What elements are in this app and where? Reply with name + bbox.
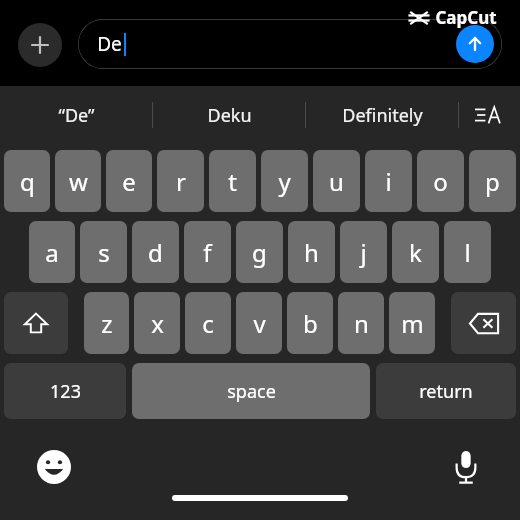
staticText: h: [304, 236, 319, 269]
staticText: u: [329, 165, 344, 198]
button[interactable]: e: [106, 150, 152, 212]
button[interactable]: m: [389, 292, 435, 354]
staticText: De: [97, 31, 122, 57]
staticText: s: [98, 236, 110, 269]
button[interactable]: return: [376, 363, 516, 419]
button[interactable]: y: [261, 150, 308, 212]
button[interactable]: g: [236, 221, 283, 283]
button[interactable]: Shift: [4, 292, 68, 354]
button[interactable]: o: [417, 150, 464, 212]
button[interactable]: Backspace: [451, 292, 516, 354]
staticText: Definitely: [342, 103, 423, 128]
staticText: a: [45, 236, 59, 269]
staticText: “De”: [58, 103, 95, 128]
staticText: v: [253, 307, 266, 340]
staticText: space: [227, 379, 276, 404]
staticText: w: [69, 165, 88, 198]
button[interactable]: f: [184, 221, 231, 283]
staticText: r: [176, 165, 186, 198]
button[interactable]: Dictation: [440, 441, 492, 493]
button[interactable]: Send: [456, 25, 494, 63]
staticText: f: [203, 236, 212, 269]
staticText: p: [485, 165, 500, 198]
staticText: m: [401, 307, 424, 340]
staticText: 123: [50, 379, 81, 404]
button[interactable]: Text formatting: [459, 86, 516, 144]
button[interactable]: Deku: [153, 86, 305, 144]
button[interactable]: k: [392, 221, 439, 283]
staticText: k: [409, 236, 422, 269]
staticText: return: [419, 379, 473, 404]
staticText: x: [151, 307, 164, 340]
button[interactable]: s: [80, 221, 127, 283]
button[interactable]: Emoji: [28, 441, 80, 493]
button[interactable]: u: [313, 150, 360, 212]
button[interactable]: “De”: [0, 86, 152, 144]
button[interactable]: w: [55, 150, 101, 212]
button[interactable]: c: [185, 292, 231, 354]
button[interactable]: d: [132, 221, 179, 283]
button[interactable]: v: [236, 292, 282, 354]
button[interactable]: t: [209, 150, 256, 212]
staticText: b: [303, 307, 318, 340]
button[interactable]: p: [469, 150, 516, 212]
staticText: d: [148, 236, 163, 269]
button[interactable]: Definitely: [306, 86, 458, 144]
staticText: e: [122, 165, 136, 198]
button[interactable]: q: [4, 150, 50, 212]
staticText: z: [101, 307, 113, 340]
button[interactable]: 123: [4, 363, 126, 419]
button[interactable]: De: [78, 19, 502, 69]
button[interactable]: space: [132, 363, 370, 419]
button[interactable]: b: [287, 292, 333, 354]
button[interactable]: z: [84, 292, 129, 354]
staticText: t: [228, 165, 237, 198]
staticText: Deku: [207, 103, 252, 128]
staticText: g: [252, 236, 267, 269]
staticText: y: [278, 165, 291, 198]
button[interactable]: r: [157, 150, 204, 212]
staticText: o: [433, 165, 448, 198]
button[interactable]: a: [29, 221, 75, 283]
button[interactable]: j: [340, 221, 387, 283]
staticText: CapCut: [435, 6, 497, 29]
button[interactable]: h: [288, 221, 335, 283]
button[interactable]: n: [338, 292, 384, 354]
staticText: l: [464, 236, 471, 269]
staticText: i: [385, 165, 392, 198]
staticText: j: [360, 236, 367, 269]
button[interactable]: x: [134, 292, 180, 354]
button[interactable]: Add attachment: [18, 23, 62, 67]
button[interactable]: i: [365, 150, 412, 212]
button[interactable]: l: [444, 221, 491, 283]
staticText: q: [20, 165, 35, 198]
staticText: n: [354, 307, 369, 340]
staticText: c: [202, 307, 214, 340]
